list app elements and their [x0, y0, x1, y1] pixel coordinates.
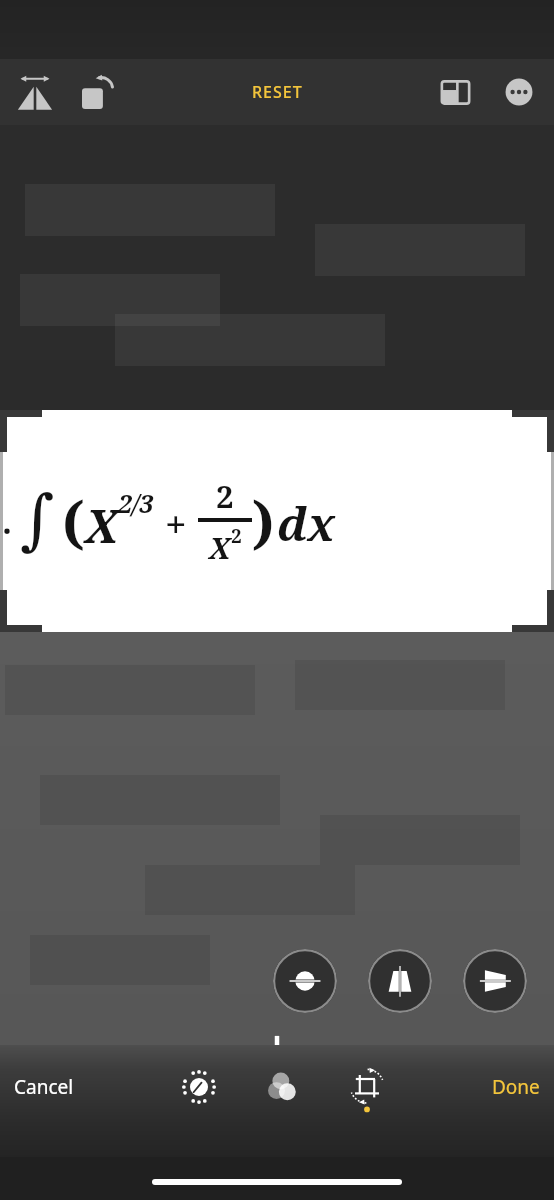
button[interactable]: Done: [478, 1062, 554, 1112]
button[interactable]: Straighten angle ruler: [0, 1030, 554, 1088]
staticText: RESET: [252, 81, 303, 103]
staticText: ∫: [20, 481, 55, 558]
button[interactable]: Cancel: [0, 1062, 88, 1112]
button[interactable]: Aspect ratio: [426, 63, 484, 121]
button[interactable]: Straighten: [273, 949, 337, 1013]
button[interactable]: RESET: [236, 71, 319, 113]
button[interactable]: Crop and rotate: [338, 1058, 396, 1116]
staticText: Cancel: [14, 1074, 74, 1100]
button[interactable]: Vertical perspective: [368, 949, 432, 1013]
staticText: 2/3: [118, 486, 154, 520]
staticText: dx: [277, 492, 336, 555]
staticText: 2: [231, 523, 242, 549]
button[interactable]: Filters: [254, 1058, 312, 1116]
button[interactable]: Flip horizontal: [6, 63, 64, 121]
staticText: Done: [492, 1074, 540, 1100]
staticText: +: [165, 497, 187, 549]
button[interactable]: Horizontal perspective: [463, 949, 527, 1013]
button[interactable]: More options: [490, 63, 548, 121]
staticText: X: [209, 528, 231, 567]
staticText: 2: [216, 475, 234, 517]
button[interactable]: Adjust: [170, 1058, 228, 1116]
staticText: (: [62, 483, 85, 559]
button[interactable]: Rotate: [72, 63, 130, 121]
staticText: .: [2, 498, 12, 544]
staticText: X: [85, 495, 118, 556]
staticText: ): [252, 483, 275, 559]
